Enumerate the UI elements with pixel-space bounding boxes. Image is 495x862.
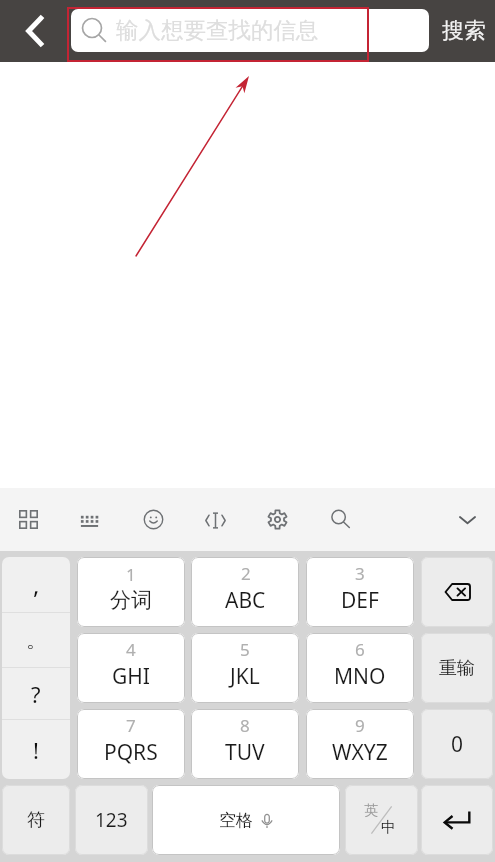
button[interactable]: 搜索: [431, 0, 495, 62]
staticText: 输入想要查找的信息: [116, 16, 319, 44]
staticText: !: [33, 735, 39, 765]
staticText: ABC: [225, 586, 266, 615]
button[interactable]: 。: [2, 613, 70, 667]
staticText: DEF: [341, 586, 379, 615]
staticText: ?: [31, 679, 41, 709]
staticText: 7: [126, 714, 136, 737]
button[interactable]: !: [2, 720, 70, 779]
staticText: 6: [355, 638, 365, 661]
button[interactable]: Back: [2, 0, 66, 62]
button[interactable]: 123: [75, 785, 148, 855]
button[interactable]: Enter: [421, 785, 493, 855]
staticText: 搜索: [442, 17, 486, 45]
button[interactable]: 1: [77, 557, 185, 627]
staticText: 123: [95, 807, 128, 833]
staticText: ,: [33, 568, 40, 601]
staticText: 8: [240, 714, 250, 737]
button[interactable]: ?: [2, 668, 70, 719]
staticText: 0: [451, 730, 464, 759]
staticText: 英: [364, 802, 378, 820]
staticText: 5: [240, 638, 250, 661]
staticText: 2: [241, 562, 251, 585]
button[interactable]: 重输: [421, 633, 493, 703]
button[interactable]: Symbols: [6, 497, 51, 542]
button[interactable]: 2: [191, 557, 299, 627]
button[interactable]: 0: [421, 709, 493, 779]
staticText: 1: [126, 563, 136, 586]
staticText: 分词: [110, 587, 152, 613]
staticText: PQRS: [104, 738, 158, 767]
button[interactable]: 符: [2, 785, 70, 855]
button[interactable]: Move cursor: [191, 496, 240, 545]
button[interactable]: Emoji: [130, 496, 177, 543]
staticText: 空格: [219, 810, 253, 831]
staticText: 中: [381, 818, 396, 837]
staticText: MNO: [334, 662, 386, 691]
staticText: 9: [355, 714, 365, 737]
button[interactable]: 3: [306, 557, 414, 627]
button[interactable]: Hide keyboard: [444, 496, 491, 543]
button[interactable]: 5: [191, 633, 299, 703]
button[interactable]: Search: [317, 496, 364, 543]
staticText: 重输: [439, 657, 475, 680]
staticText: TUV: [225, 738, 265, 767]
button[interactable]: 7: [77, 709, 185, 779]
staticText: JKL: [230, 662, 260, 691]
button[interactable]: 8: [191, 709, 299, 779]
button[interactable]: 6: [306, 633, 414, 703]
button[interactable]: 空格: [152, 785, 340, 855]
staticText: 。: [26, 627, 47, 653]
staticText: GHI: [112, 662, 150, 691]
staticText: 符: [27, 809, 45, 832]
button[interactable]: Keyboard: [67, 498, 113, 544]
button[interactable]: 输入想要查找的信息: [71, 9, 429, 52]
button[interactable]: Switch language: [345, 785, 418, 855]
button[interactable]: ,: [2, 557, 70, 612]
staticText: 4: [126, 638, 136, 661]
staticText: WXYZ: [332, 738, 388, 767]
button[interactable]: Settings: [254, 496, 301, 543]
button[interactable]: Backspace: [421, 557, 493, 627]
button[interactable]: 4: [77, 633, 185, 703]
staticText: 3: [355, 562, 365, 585]
button[interactable]: 9: [306, 709, 414, 779]
